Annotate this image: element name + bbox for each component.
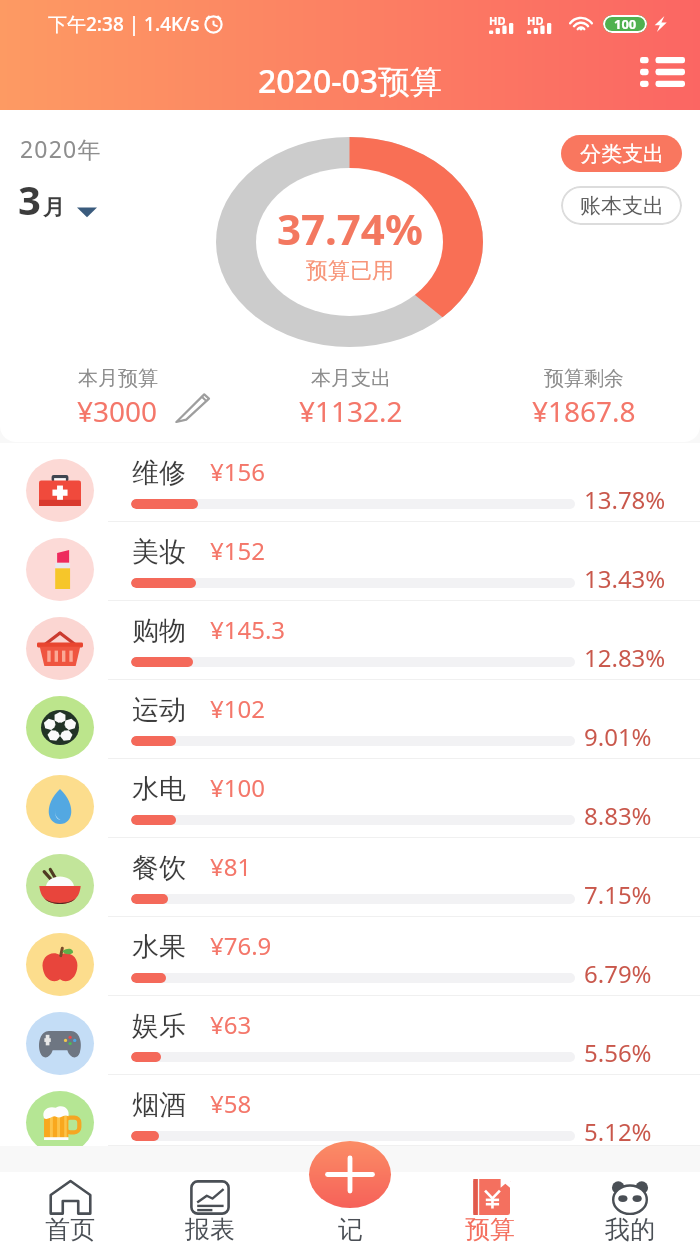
other: Edit budget [175, 392, 209, 422]
button[interactable]: Add record [309, 1141, 391, 1208]
button[interactable]: 首页 [0, 1172, 140, 1208]
staticText: 水电 [132, 772, 186, 806]
button[interactable]: Menu [631, 48, 694, 96]
staticText: ¥58 [210, 1087, 252, 1120]
staticText: 下午2:38 | 1.4K/s [48, 11, 200, 37]
staticText: 本月预算 [78, 366, 158, 391]
button[interactable]: 记 [280, 1172, 420, 1208]
staticText: 5.12% [584, 1115, 652, 1146]
staticText: ¥3000 [77, 392, 158, 430]
button[interactable]: 运动 [0, 680, 700, 759]
staticText: 预算已用 [306, 257, 394, 285]
staticText: 5.56% [584, 1036, 652, 1069]
staticText: 运动 [132, 693, 186, 727]
staticText: ¥152 [210, 534, 265, 567]
staticText: 预算 [465, 1214, 515, 1244]
staticText: ¥1132.2 [299, 392, 403, 430]
staticText: 水果 [132, 930, 186, 964]
staticText: 9.01% [584, 720, 652, 753]
staticText: 12.83% [584, 641, 666, 674]
staticText: 餐饮 [132, 851, 186, 885]
staticText: ¥81 [210, 850, 252, 883]
staticText: 美妆 [132, 535, 186, 569]
button[interactable]: 预算 [420, 1172, 560, 1208]
staticText: 购物 [132, 614, 186, 648]
staticText: 月 [43, 194, 65, 222]
staticText: ¥145.3 [210, 613, 286, 646]
button[interactable]: 分类支出 [561, 135, 682, 172]
staticText: 烟酒 [132, 1088, 186, 1122]
staticText: 分类支出 [580, 141, 664, 167]
staticText: 13.43% [584, 562, 666, 595]
staticText: 维修 [132, 456, 186, 490]
staticText: 100 [614, 15, 637, 33]
button[interactable]: 我的 [560, 1172, 700, 1208]
staticText: ¥102 [210, 692, 265, 725]
staticText: 2020-03预算 [258, 59, 443, 103]
staticText: 首页 [45, 1214, 95, 1244]
staticText: HD [527, 13, 544, 28]
button[interactable]: 维修 [0, 443, 700, 522]
staticText: ¥63 [210, 1008, 252, 1041]
button[interactable]: 购物 [0, 601, 700, 680]
staticText: 账本支出 [580, 193, 664, 219]
button[interactable]: 账本支出 [561, 186, 682, 225]
staticText: 预算剩余 [544, 366, 624, 391]
staticText: ¥100 [210, 771, 265, 804]
button[interactable]: 水电 [0, 759, 700, 838]
staticText: 7.15% [584, 878, 652, 911]
button[interactable]: 烟酒 [0, 1075, 700, 1146]
staticText: 3 [18, 172, 41, 226]
staticText: 6.79% [584, 957, 652, 990]
staticText: 记 [338, 1214, 363, 1244]
staticText: 13.78% [584, 483, 666, 516]
staticText: ¥1867.8 [532, 392, 636, 430]
staticText: ¥156 [210, 455, 265, 488]
button[interactable]: 娱乐 [0, 996, 700, 1075]
staticText: 报表 [185, 1214, 235, 1244]
button[interactable]: 水果 [0, 917, 700, 996]
staticText: 我的 [605, 1214, 655, 1244]
staticText: 本月支出 [311, 366, 391, 391]
staticText: 2020年 [20, 133, 102, 164]
staticText: 娱乐 [132, 1009, 186, 1043]
button[interactable]: 报表 [140, 1172, 280, 1208]
staticText: 37.74% [277, 200, 423, 257]
staticText: ¥76.9 [210, 929, 272, 962]
staticText: 8.83% [584, 799, 652, 832]
button[interactable]: 美妆 [0, 522, 700, 601]
button[interactable]: 餐饮 [0, 838, 700, 917]
staticText: HD [489, 13, 506, 28]
